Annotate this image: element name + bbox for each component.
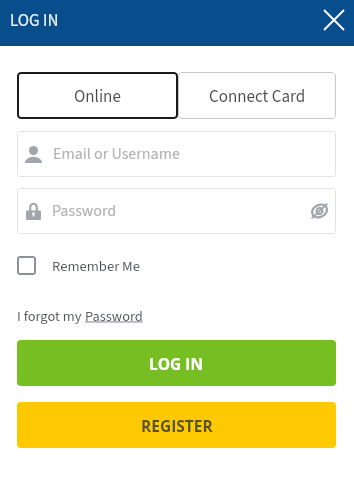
staticText: REGISTER (141, 415, 213, 436)
staticText: LOG IN (149, 353, 204, 374)
staticText: Password (52, 200, 117, 223)
button[interactable]: Remember Me (17, 256, 140, 275)
staticText: Email or Username (53, 143, 180, 166)
button[interactable]: Password (85, 306, 143, 327)
button[interactable]: Connect Card (178, 72, 336, 119)
staticText: Password (85, 306, 143, 327)
staticText: I forgot my (17, 306, 85, 327)
button[interactable]: REGISTER (17, 402, 336, 448)
staticText: LOG IN (10, 9, 59, 33)
staticText: Remember Me (52, 256, 140, 275)
button[interactable]: Close (316, 2, 352, 38)
button[interactable]: Online (17, 72, 178, 119)
button[interactable]: Password (17, 188, 336, 234)
button[interactable]: Email or Username (17, 131, 336, 177)
staticText: Online (74, 85, 121, 109)
staticText: Connect Card (209, 85, 306, 109)
button[interactable]: LOG IN (17, 340, 336, 386)
button[interactable]: Show password (307, 199, 331, 223)
